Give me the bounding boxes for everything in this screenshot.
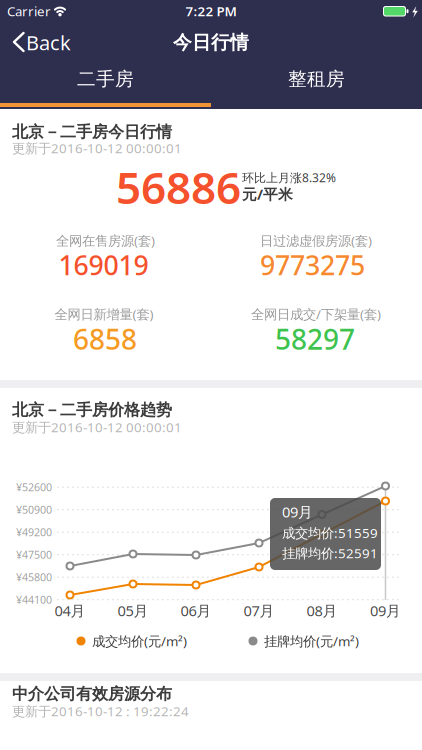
staticText: 7:22 PM <box>185 2 236 20</box>
staticText: ¥47500 <box>16 548 52 562</box>
staticText: 全网在售房源(套) <box>56 232 155 249</box>
staticText: 08月 <box>306 601 337 620</box>
staticText: 成交均价(元/m²) <box>92 632 187 650</box>
staticText: ¥50900 <box>16 503 52 517</box>
staticText: 07月 <box>243 601 274 620</box>
staticText: 56886 <box>116 158 241 216</box>
staticText: 二手房 <box>77 67 134 90</box>
button[interactable]: 二手房 <box>0 61 211 101</box>
staticText: 挂牌均价(元/m²) <box>264 632 359 650</box>
staticText: 全网日成交/下架量(套) <box>251 305 381 323</box>
staticText: 9773275 <box>260 247 365 283</box>
staticText: 环比上月涨8.32% <box>242 169 336 185</box>
staticText: 挂牌均价:52591 <box>282 544 378 562</box>
staticText: 06月 <box>180 601 211 620</box>
button[interactable]: Back <box>0 25 80 61</box>
staticText: 日过滤虚假房源(套) <box>260 232 372 249</box>
staticText: 09月 <box>370 601 401 620</box>
staticText: ¥52600 <box>16 480 52 494</box>
staticText: 更新于2016-10-12 00:00:01 <box>12 139 182 157</box>
staticText: 更新于2016-10-12 : 19:22:24 <box>12 702 189 720</box>
staticText: 全网日新增量(套) <box>54 305 153 323</box>
button[interactable]: 整租房 <box>211 61 422 101</box>
staticText: 58297 <box>275 320 355 358</box>
staticText: 04月 <box>54 601 85 620</box>
staticText: 05月 <box>117 601 148 620</box>
staticText: 169019 <box>58 247 148 283</box>
staticText: Carrier <box>7 2 51 20</box>
staticText: 中介公司有效房源分布 <box>12 684 172 704</box>
staticText: 成交均价:51559 <box>282 524 378 542</box>
staticText: ¥45800 <box>16 570 52 584</box>
staticText: ¥44100 <box>16 593 52 607</box>
staticText: 元/平米 <box>242 184 293 204</box>
staticText: 整租房 <box>288 67 345 90</box>
staticText: 北京－二手房今日行情 <box>12 122 172 142</box>
staticText: 09月 <box>282 502 313 521</box>
staticText: 更新于2016-10-12 00:00:01 <box>12 418 182 436</box>
staticText: 今日行情 <box>173 31 249 54</box>
staticText: 6858 <box>73 320 137 358</box>
staticText: ¥49200 <box>16 525 52 539</box>
staticText: 北京－二手房价格趋势 <box>12 400 172 420</box>
staticText: Back <box>26 29 71 56</box>
